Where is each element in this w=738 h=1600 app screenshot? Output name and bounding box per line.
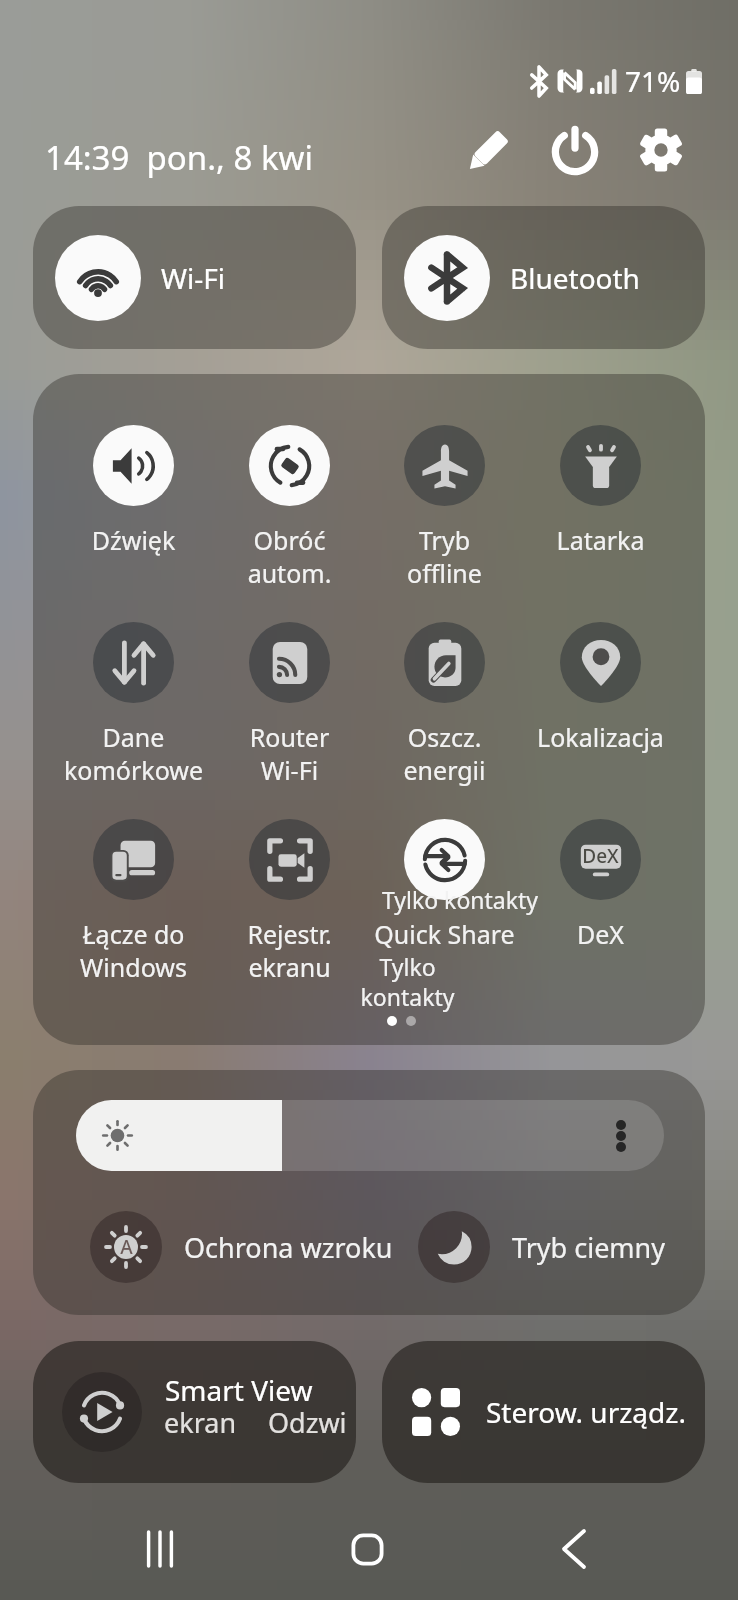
button[interactable]: Oszcz. energii xyxy=(367,622,522,787)
button[interactable]: Latarka xyxy=(523,425,678,557)
staticText: Odzwi xyxy=(268,1404,347,1441)
button[interactable]: Smart View xyxy=(33,1341,356,1483)
staticText: Tylko kontakty xyxy=(345,884,575,915)
button[interactable]: Power xyxy=(541,116,609,184)
staticText: Ochrona wzroku xyxy=(184,1229,393,1266)
button[interactable]: Settings xyxy=(627,116,695,184)
staticText: Dźwięk xyxy=(56,523,211,557)
button[interactable]: Recents xyxy=(110,1499,210,1599)
staticText: Oszcz. energii xyxy=(367,720,522,787)
staticText: 14:39 pon., 8 kwi xyxy=(45,135,313,180)
staticText: Smart View xyxy=(165,1371,313,1409)
button[interactable]: Dane komórkowe xyxy=(56,622,211,787)
staticText: Łącze do Windows xyxy=(56,917,211,984)
staticText: A xyxy=(120,1234,133,1260)
button[interactable]: Router Wi-Fi xyxy=(212,622,367,787)
staticText: Rejestr. ekranu xyxy=(212,917,367,984)
button[interactable]: Home xyxy=(317,1499,417,1599)
button[interactable]: Bluetooth xyxy=(382,206,705,349)
button[interactable]: Tryb offline xyxy=(367,425,522,590)
staticText: Latarka xyxy=(523,523,678,557)
button[interactable]: DeX xyxy=(523,819,678,951)
staticText: Wi-Fi xyxy=(161,259,226,297)
button[interactable]: Back xyxy=(524,1499,624,1599)
button[interactable]: Tryb ciemny xyxy=(418,1211,666,1283)
button[interactable]: Łącze do Windows xyxy=(56,819,211,984)
button[interactable]: Wi-Fi xyxy=(33,206,356,349)
staticText: Dane komórkowe xyxy=(56,720,211,787)
staticText: Router Wi-Fi xyxy=(212,720,367,787)
button[interactable]: Quick Share xyxy=(367,819,522,1013)
button[interactable]: Obróć autom. xyxy=(212,425,367,590)
button[interactable]: Dźwięk xyxy=(56,425,211,557)
staticText: Sterow. urządz. xyxy=(486,1393,686,1431)
staticText: Lokalizacja xyxy=(523,720,678,754)
staticText: 71% xyxy=(625,62,681,100)
staticText: Tylko kontakty xyxy=(330,951,485,1013)
button[interactable]: A xyxy=(90,1211,393,1283)
staticText: Tryb ciemny xyxy=(512,1229,666,1266)
button[interactable] xyxy=(76,1100,664,1171)
button[interactable]: Edit xyxy=(455,116,523,184)
staticText: Obróć autom. xyxy=(212,523,367,590)
staticText: Tryb offline xyxy=(367,523,522,590)
staticText: ekran xyxy=(164,1404,237,1441)
staticText: Bluetooth xyxy=(510,259,640,297)
button[interactable]: Sterow. urządz. xyxy=(382,1341,705,1483)
staticText: DeX xyxy=(523,917,678,951)
button[interactable]: Rejestr. ekranu xyxy=(212,819,367,984)
staticText: Quick Share xyxy=(367,917,522,951)
button[interactable]: Lokalizacja xyxy=(523,622,678,754)
staticText: DeX xyxy=(582,843,619,869)
